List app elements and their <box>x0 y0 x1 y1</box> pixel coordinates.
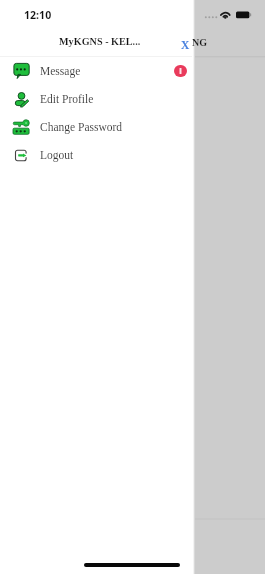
staticText: 12:10 <box>24 8 52 22</box>
button[interactable]: Change Password <box>0 112 193 140</box>
staticText: MyKGNS - KEL... <box>59 36 141 47</box>
button[interactable]: Logout <box>0 139 193 167</box>
button[interactable]: Edit Profile <box>0 85 193 113</box>
staticText: Edit Profile <box>40 93 94 106</box>
button[interactable]: Message <box>0 57 193 85</box>
staticText: Logout <box>40 149 74 162</box>
staticText: Change Password <box>40 121 123 134</box>
staticText: NG <box>192 37 207 48</box>
staticText: X <box>181 39 190 52</box>
button[interactable]: Close navigation drawer <box>176 35 195 55</box>
staticText: Message <box>40 65 81 78</box>
